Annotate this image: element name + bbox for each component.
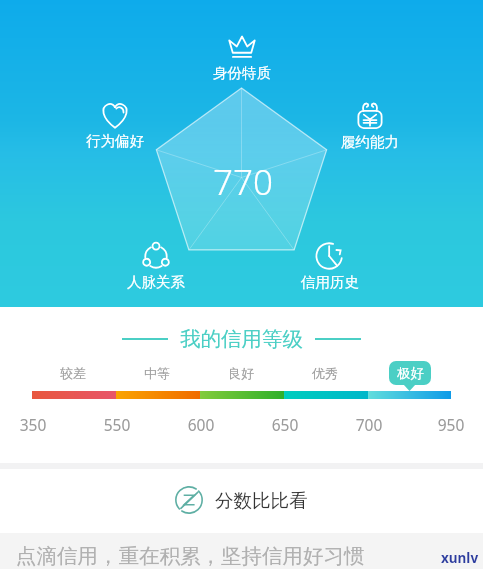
staticText: 600 (176, 414, 226, 435)
button[interactable]: 极好 (389, 361, 431, 385)
staticText: 极好 (397, 365, 424, 382)
staticText: 良好 (216, 365, 266, 381)
staticText: 中等 (132, 365, 182, 381)
staticText: 650 (260, 414, 310, 435)
staticText: 分数比比看 (215, 489, 308, 512)
staticText: 信用历史 (301, 273, 359, 291)
staticText: 770 (213, 158, 273, 206)
button[interactable]: 信用历史 (294, 242, 366, 291)
button[interactable]: 行为偏好 (79, 101, 151, 150)
staticText: 700 (344, 414, 394, 435)
staticText: 950 (426, 414, 476, 435)
staticText: xunlv (441, 549, 479, 567)
staticText: 行为偏好 (86, 132, 144, 150)
button[interactable]: 分数比比看 (0, 469, 483, 533)
button[interactable]: 履约能力 (334, 102, 406, 151)
staticText: 较差 (48, 365, 98, 381)
staticText: 点滴信用，重在积累，坚持信用好习惯 (16, 543, 365, 569)
staticText: 身份特质 (213, 64, 271, 82)
staticText: 350 (8, 414, 58, 435)
button[interactable]: 人脉关系 (120, 242, 192, 291)
staticText: 履约能力 (341, 133, 399, 151)
button[interactable]: 身份特质 (206, 33, 278, 82)
staticText: 优秀 (300, 365, 350, 381)
staticText: 人脉关系 (127, 273, 185, 291)
staticText: 550 (92, 414, 142, 435)
staticText: 我的信用等级 (180, 326, 303, 352)
